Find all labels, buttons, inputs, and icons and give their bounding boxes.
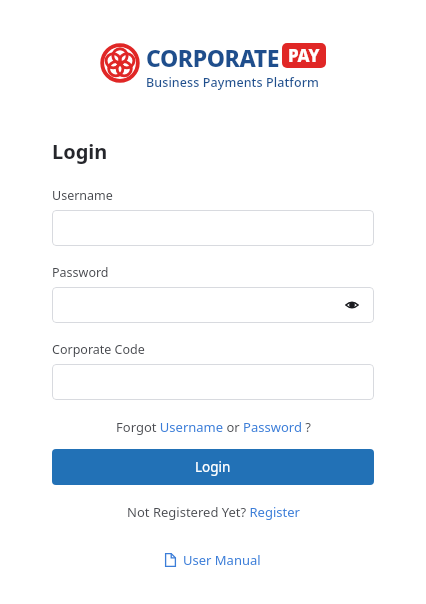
staticText: PAY bbox=[288, 44, 320, 67]
staticText: Corporate Code bbox=[52, 341, 145, 358]
button[interactable]: Show password bbox=[342, 295, 362, 315]
button[interactable]: Login bbox=[52, 449, 374, 485]
button[interactable]: User Manual bbox=[165, 551, 261, 569]
staticText: Login bbox=[195, 458, 231, 476]
button[interactable]: Not Registered Yet? Register bbox=[127, 503, 300, 521]
button[interactable] bbox=[52, 210, 374, 246]
button[interactable]: Show password bbox=[52, 287, 374, 323]
staticText: User Manual bbox=[183, 551, 261, 569]
staticText: Password bbox=[52, 264, 109, 281]
staticText: Business Payments Platform bbox=[146, 74, 319, 91]
button[interactable]: Forgot Username or Password ? bbox=[116, 418, 311, 436]
staticText: CORPORATE bbox=[146, 42, 280, 73]
staticText: Login bbox=[52, 138, 108, 165]
staticText: Username bbox=[52, 187, 113, 204]
button[interactable] bbox=[52, 364, 374, 400]
